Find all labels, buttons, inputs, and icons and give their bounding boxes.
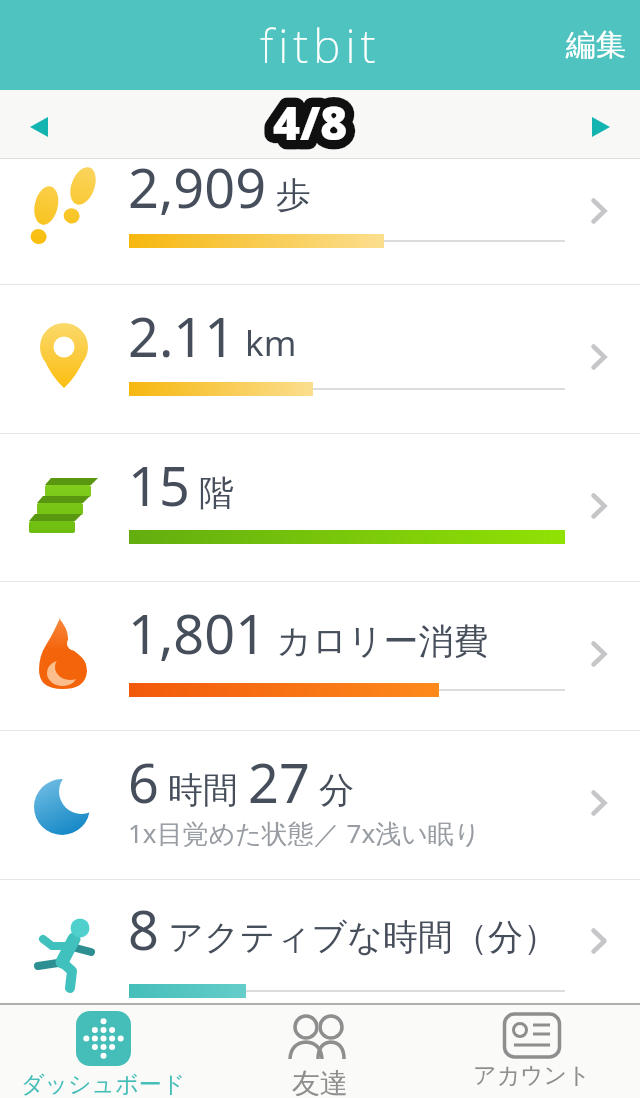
staticText: ダッシュボード bbox=[21, 1070, 186, 1098]
staticText: カロリー消費 bbox=[267, 616, 489, 664]
staticText: 1,801 bbox=[128, 596, 267, 670]
button[interactable]: 編集 bbox=[566, 0, 626, 90]
button[interactable]: 2.11 bbox=[0, 285, 640, 433]
button[interactable]: アカウント bbox=[462, 1011, 602, 1090]
staticText: アクティブな時間（分） bbox=[159, 912, 559, 960]
staticText: 4/8 bbox=[273, 91, 348, 154]
staticText: 友達 bbox=[292, 1066, 348, 1098]
staticText: 分 bbox=[310, 765, 355, 813]
staticText: 15 bbox=[128, 448, 190, 522]
staticText: 6 bbox=[128, 745, 159, 819]
button[interactable]: 6 bbox=[0, 731, 640, 879]
staticText: 階 bbox=[190, 468, 235, 516]
staticText: 4/8 bbox=[273, 91, 348, 154]
button[interactable]: 2,909 bbox=[0, 159, 640, 284]
button[interactable] bbox=[30, 117, 48, 137]
staticText: アカウント bbox=[473, 1061, 591, 1090]
staticText: 2,909 bbox=[128, 150, 267, 224]
staticText: km bbox=[236, 319, 297, 367]
staticText: 時間 bbox=[159, 765, 248, 813]
staticText: 編集 bbox=[566, 26, 626, 64]
button[interactable] bbox=[592, 117, 610, 137]
button[interactable]: 8 bbox=[0, 880, 640, 1003]
staticText: 歩 bbox=[267, 170, 312, 218]
button[interactable]: 友達 bbox=[250, 1011, 390, 1098]
button[interactable]: 1,801 bbox=[0, 582, 640, 730]
staticText: fitbit bbox=[260, 14, 381, 77]
button[interactable]: ダッシュボード bbox=[8, 1011, 198, 1098]
staticText: 1x目覚めた状態／ 7x浅い眠り bbox=[128, 815, 481, 851]
staticText: 27 bbox=[248, 745, 310, 819]
staticText: 2.11 bbox=[128, 299, 236, 373]
staticText: 8 bbox=[128, 892, 159, 966]
button[interactable]: 15 bbox=[0, 434, 640, 581]
